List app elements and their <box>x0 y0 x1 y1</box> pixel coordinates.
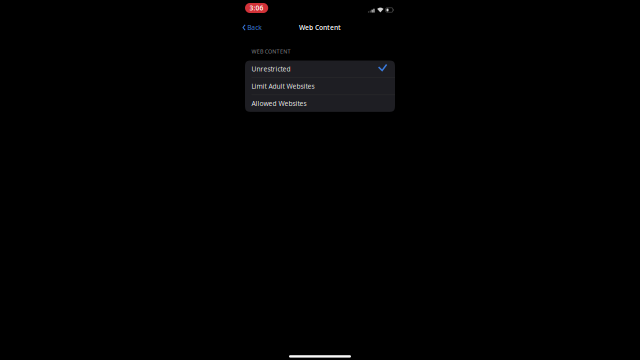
staticText: Unrestricted <box>251 64 290 73</box>
staticText: Allowed Websites <box>251 99 306 108</box>
staticText: Limit Adult Websites <box>251 82 314 91</box>
button[interactable]: Unrestricted <box>245 60 395 77</box>
staticText: Back <box>247 23 262 32</box>
staticText: Web Content <box>299 23 341 32</box>
button[interactable]: Back <box>240 20 267 35</box>
button[interactable]: Limit Adult Websites <box>245 78 395 95</box>
staticText: 3:06 <box>250 4 264 12</box>
button[interactable]: Allowed Websites <box>245 95 395 112</box>
staticText: WEB CONTENT <box>251 48 290 55</box>
